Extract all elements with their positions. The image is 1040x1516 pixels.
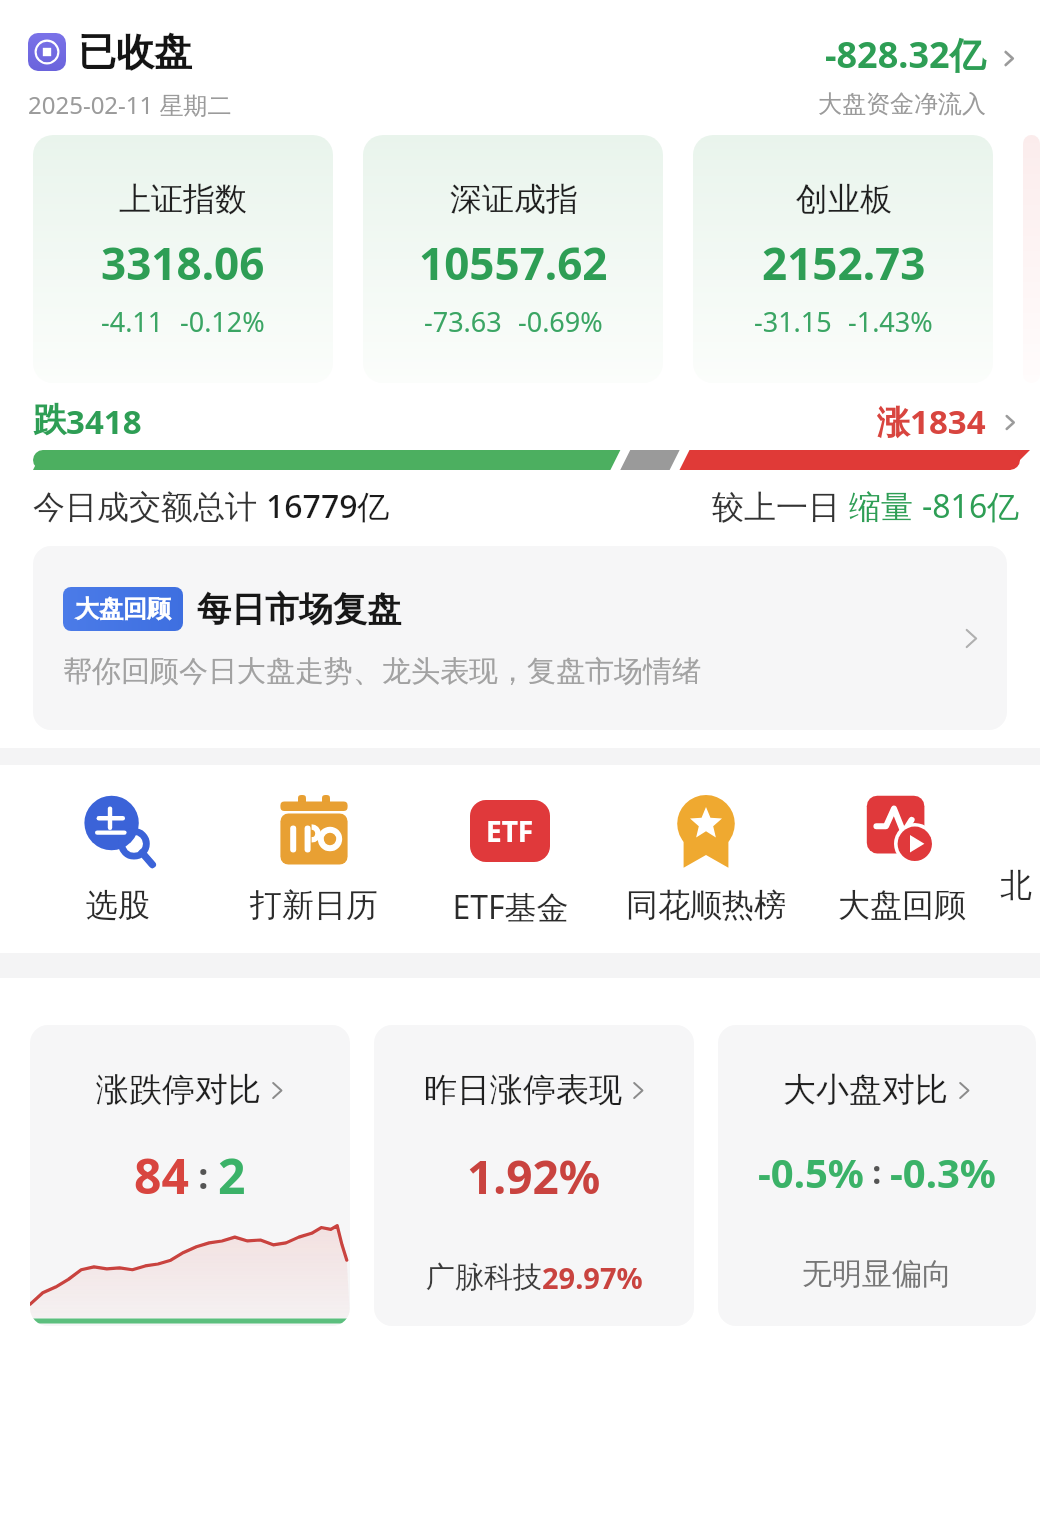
staticText: 每日市场复盘 xyxy=(197,588,401,631)
other: 打新日历 xyxy=(274,791,354,871)
staticText: -828.32亿 xyxy=(825,30,986,79)
staticText: 今日成交额总计 xyxy=(33,484,266,528)
staticText: 广脉科技 xyxy=(426,1259,542,1296)
staticText: 跌 xyxy=(33,399,66,441)
staticText: -816亿 xyxy=(922,484,1020,528)
staticText: : xyxy=(189,1151,218,1200)
staticText: -0.5% xyxy=(758,1145,864,1199)
staticText: 2 xyxy=(218,1143,246,1208)
staticText: 涨1834 xyxy=(877,399,986,444)
staticText: 上证指数 xyxy=(119,179,247,219)
staticText: 大小盘对比 xyxy=(783,1069,948,1111)
button[interactable]: 大盘资金净流入详情 xyxy=(994,44,1022,72)
button[interactable]: 选股 xyxy=(20,787,216,929)
staticText: 大盘回顾 xyxy=(75,594,171,624)
staticText: 无明显偏向 xyxy=(802,1255,952,1293)
button[interactable]: 昨日涨停表现 xyxy=(374,1025,694,1326)
staticText: -73.63 xyxy=(424,303,502,340)
button[interactable] xyxy=(1023,135,1040,383)
button[interactable]: 同花顺热榜 xyxy=(608,787,804,929)
button[interactable]: 涨跌停对比 xyxy=(30,1025,350,1326)
staticText: 3318.06 xyxy=(101,233,265,293)
button[interactable]: 上证指数 xyxy=(33,135,333,383)
staticText: 10557.62 xyxy=(419,233,608,293)
staticText: 涨跌停对比 xyxy=(96,1069,261,1111)
staticText: -4.11 xyxy=(101,303,164,340)
other: ETF基金 xyxy=(470,791,550,871)
staticText: 1.92% xyxy=(467,1145,601,1208)
staticText: ETF基金 xyxy=(452,885,569,929)
staticText: 较上一日 xyxy=(712,484,849,528)
staticText: 大盘资金净流入 xyxy=(818,89,986,119)
button[interactable]: 跌 xyxy=(33,399,1022,444)
button[interactable]: 深证成指 xyxy=(363,135,663,383)
staticText: 打新日历 xyxy=(250,885,378,925)
staticText: -1.43% xyxy=(848,303,933,340)
staticText: 选股 xyxy=(86,885,150,925)
button[interactable]: 打新日历 xyxy=(216,787,412,929)
staticText: -31.15 xyxy=(754,303,832,340)
other: 大盘回顾 xyxy=(862,791,942,871)
button[interactable]: 大小盘对比 xyxy=(718,1025,1036,1326)
staticText: 缩量 xyxy=(849,484,922,528)
staticText: ETF xyxy=(486,812,534,850)
staticText: 16779亿 xyxy=(266,484,390,528)
button[interactable]: 大盘回顾 xyxy=(33,546,1007,730)
staticText: 帮你回顾今日大盘走势、龙头表现，复盘市场情绪 xyxy=(63,653,701,690)
staticText: : xyxy=(864,1150,890,1194)
staticText: -0.3% xyxy=(890,1145,996,1199)
staticText: 29.97% xyxy=(542,1258,643,1297)
staticText: 昨日涨停表现 xyxy=(424,1069,622,1111)
staticText: 已收盘 xyxy=(78,28,192,76)
staticText: 深证成指 xyxy=(450,179,578,219)
staticText: 创业板 xyxy=(796,179,892,219)
button[interactable]: 大盘回顾 xyxy=(804,787,1000,929)
staticText: 2152.73 xyxy=(762,233,926,293)
staticText: -0.12% xyxy=(180,303,265,340)
staticText: 大盘回顾 xyxy=(838,885,966,925)
button[interactable]: 创业板 xyxy=(693,135,993,383)
staticText: 3418 xyxy=(66,399,142,444)
staticText: 北 xyxy=(1000,865,1032,905)
other: 同花顺热榜 xyxy=(666,791,746,871)
staticText: 同花顺热榜 xyxy=(626,885,786,925)
other: 选股 xyxy=(78,791,158,871)
button[interactable]: ETF基金 xyxy=(412,787,608,933)
staticText: -0.69% xyxy=(518,303,603,340)
staticText: 84 xyxy=(134,1143,189,1208)
staticText: 2025-02-11 星期二 xyxy=(28,88,232,121)
